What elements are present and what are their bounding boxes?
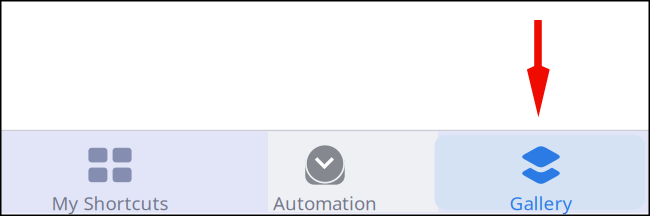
staticText: Gallery (509, 191, 572, 215)
button[interactable]: Gallery (436, 143, 646, 215)
staticText: My Shortcuts (51, 191, 168, 215)
staticText: Automation (273, 191, 377, 215)
button[interactable]: Automation (220, 143, 430, 215)
button[interactable]: My Shortcuts (5, 143, 215, 215)
